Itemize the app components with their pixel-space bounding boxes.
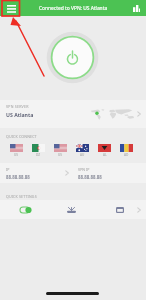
button[interactable]: VPN IP	[78, 167, 102, 180]
button[interactable]: US	[10, 144, 23, 157]
button[interactable]: Statistics	[129, 1, 143, 15]
button[interactable]: Router setup	[63, 201, 80, 218]
staticText: AD	[124, 153, 129, 157]
staticText: IP	[6, 167, 10, 172]
staticText: US	[14, 153, 19, 157]
staticText: AL	[103, 153, 107, 157]
staticText: US Atlanta	[6, 111, 34, 118]
button[interactable]: DZ	[32, 144, 45, 157]
button[interactable]: AU	[76, 144, 89, 157]
button[interactable]: AD	[120, 144, 133, 157]
staticText: US	[58, 153, 63, 157]
button[interactable]: VPN SERVER	[0, 100, 146, 128]
staticText: QUICK SETTINGS	[6, 194, 37, 199]
staticText: VPN IP	[78, 167, 90, 172]
button[interactable]: Auto connect	[17, 201, 35, 218]
button[interactable]: IP	[6, 167, 30, 180]
staticText: QUICK CONNECT	[6, 134, 37, 139]
button[interactable]: Ad blocker	[111, 201, 128, 218]
staticText: 88.88.88.88	[6, 174, 30, 180]
button[interactable]: Menu	[3, 0, 19, 16]
staticText: Connected to VPN: US Atlanta	[39, 5, 108, 12]
staticText: AU	[80, 153, 85, 157]
button[interactable]: AL	[98, 144, 111, 157]
button[interactable]: US	[54, 144, 67, 157]
staticText: 88.88.88.88	[78, 174, 102, 180]
button[interactable]: Disconnect VPN	[47, 32, 99, 84]
staticText: VPN SERVER	[6, 104, 29, 109]
staticText: DZ	[36, 153, 41, 157]
